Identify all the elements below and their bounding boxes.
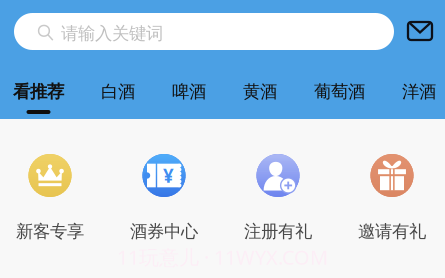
- staticText: 葡萄酒: [314, 81, 365, 102]
- staticText: 白酒: [101, 81, 135, 102]
- button[interactable]: 洋酒: [402, 81, 436, 114]
- button[interactable]: 啤酒: [172, 81, 206, 114]
- staticText: 注册有礼: [244, 221, 312, 242]
- staticText: ¥: [163, 163, 174, 188]
- button[interactable]: 注册有礼: [228, 154, 328, 242]
- button[interactable]: 看推荐: [13, 81, 64, 114]
- staticText: 啤酒: [172, 81, 206, 102]
- staticText: 新客专享: [16, 221, 84, 242]
- staticText: 邀请有礼: [358, 221, 426, 242]
- button[interactable]: 新客专享: [0, 154, 100, 242]
- staticText: 请输入关键词: [61, 23, 163, 44]
- button[interactable]: 葡萄酒: [314, 81, 365, 114]
- button[interactable]: 白酒: [101, 81, 135, 114]
- button[interactable]: 黄酒: [243, 81, 277, 114]
- staticText: 黄酒: [243, 81, 277, 102]
- staticText: 看推荐: [13, 81, 64, 102]
- button[interactable]: ¥: [114, 154, 214, 242]
- button[interactable]: 请输入关键词: [14, 13, 394, 50]
- button[interactable]: Messages: [405, 18, 435, 44]
- staticText: 洋酒: [402, 81, 436, 102]
- staticText: 酒券中心: [130, 221, 198, 242]
- button[interactable]: 邀请有礼: [342, 154, 442, 242]
